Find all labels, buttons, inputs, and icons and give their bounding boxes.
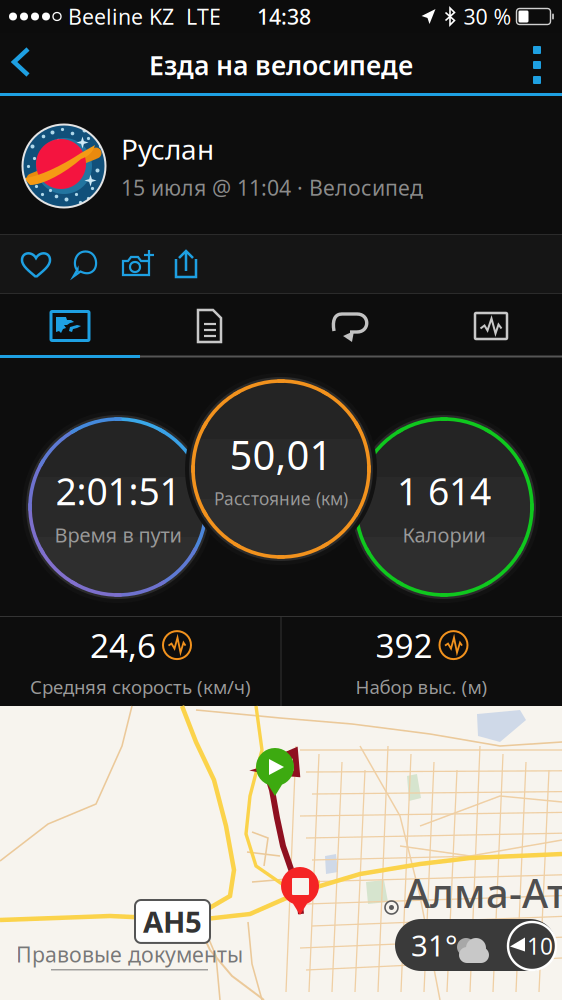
button[interactable]: Laps <box>280 294 420 358</box>
staticText: 14:38 <box>257 2 311 31</box>
staticText: 1 614 <box>397 466 491 515</box>
staticText: 24,6 <box>90 623 156 667</box>
staticText: Beeline KZ <box>68 2 174 31</box>
staticText: Средняя скорость (км/ч) <box>30 674 251 699</box>
staticText: Руслан <box>121 130 214 167</box>
button[interactable]: Add photo <box>111 234 161 294</box>
staticText: 2:01:51 <box>55 466 180 515</box>
staticText: 10 <box>527 931 553 961</box>
button[interactable]: Back <box>0 45 48 85</box>
staticText: 31° <box>411 925 458 964</box>
button[interactable]: Charts <box>420 294 562 358</box>
staticText: Набор выс. (м) <box>355 674 487 699</box>
staticText: 15 июля @ 11:04 · Велосипед <box>121 173 423 202</box>
staticText: Правовые документы <box>16 940 243 968</box>
button[interactable]: Share <box>161 234 211 294</box>
button[interactable]: Comment <box>61 234 111 294</box>
staticText: LTE <box>186 2 221 31</box>
button[interactable]: More options <box>512 34 562 96</box>
staticText: Калории <box>402 521 485 548</box>
staticText: Расстояние (км) <box>214 487 348 510</box>
staticText: 50,01 <box>229 428 332 481</box>
button[interactable]: Правовые документы <box>16 940 243 970</box>
staticText: Алма-Ат <box>404 866 562 919</box>
staticText: Езда на велосипеде <box>149 47 413 83</box>
staticText: 30 % <box>463 2 511 31</box>
staticText: Время в пути <box>54 521 181 548</box>
staticText: AH5 <box>143 902 202 941</box>
button[interactable]: Like <box>11 234 61 294</box>
button[interactable]: Details <box>140 294 280 358</box>
button[interactable]: Map <box>0 294 140 358</box>
staticText: 392 <box>375 623 432 667</box>
